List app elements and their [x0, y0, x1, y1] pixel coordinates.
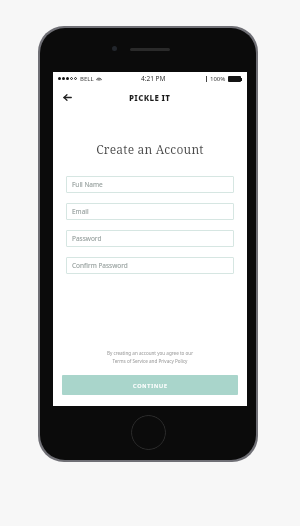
- staticText: BELL: [80, 75, 94, 83]
- button[interactable]: Back: [56, 86, 78, 108]
- staticText: 4:21 PM: [141, 74, 166, 83]
- staticText: Full Name: [72, 180, 103, 189]
- button[interactable]: Full Name: [66, 176, 234, 193]
- staticText: By creating an account you agree to our: [53, 350, 247, 356]
- button[interactable]: Terms of Service and Privacy Policy: [53, 358, 247, 364]
- button[interactable]: CONTINUE: [62, 375, 238, 395]
- staticText: PICKLE IT: [129, 92, 171, 103]
- staticText: Create an Account: [53, 141, 247, 157]
- staticText: 100%: [210, 75, 226, 83]
- button[interactable]: Confirm Password: [66, 257, 234, 274]
- button[interactable]: Email: [66, 203, 234, 220]
- button[interactable]: Password: [66, 230, 234, 247]
- staticText: Password: [72, 234, 102, 243]
- staticText: Email: [72, 207, 89, 216]
- staticText: Confirm Password: [72, 261, 128, 270]
- staticText: CONTINUE: [133, 382, 168, 389]
